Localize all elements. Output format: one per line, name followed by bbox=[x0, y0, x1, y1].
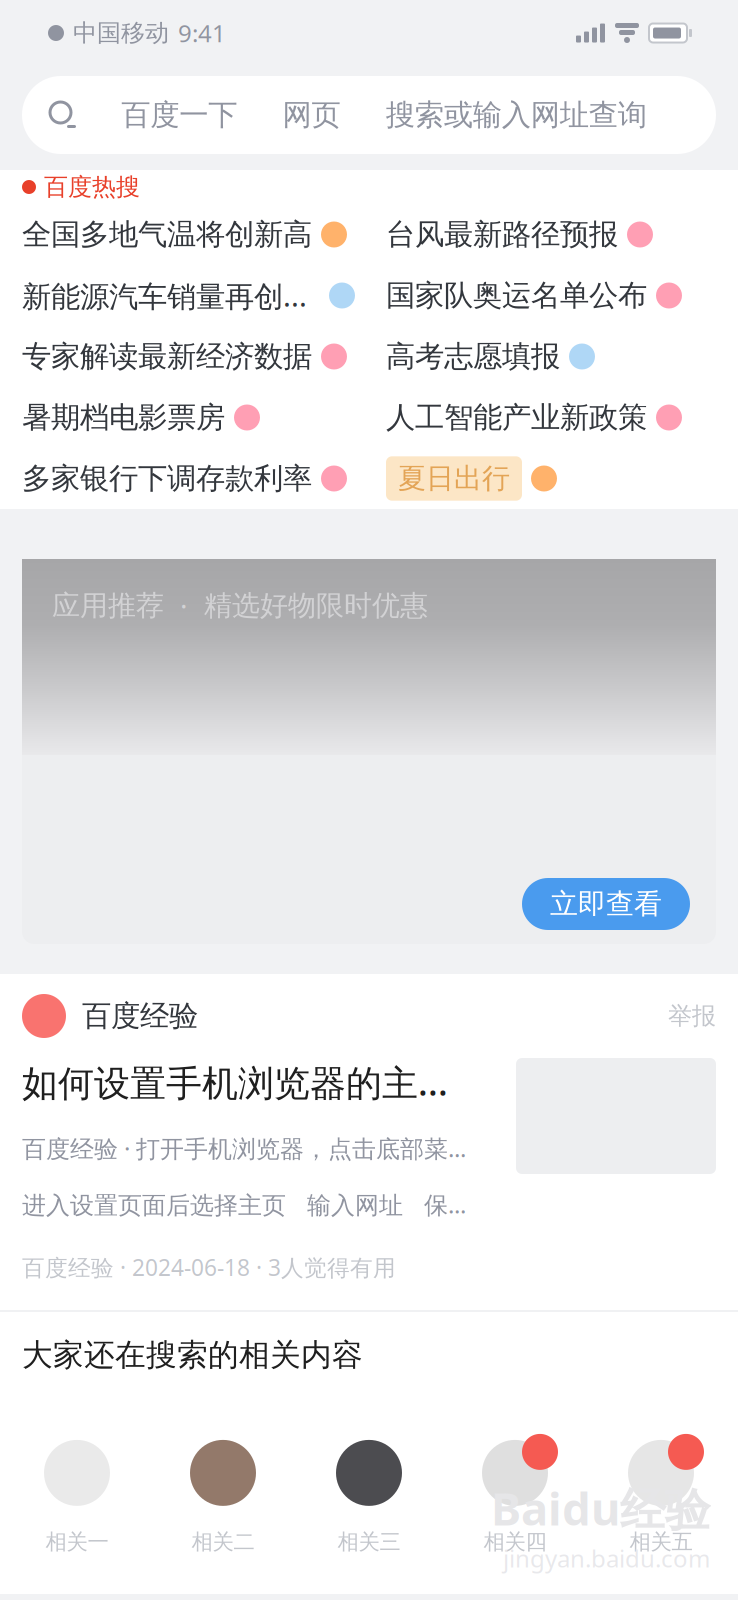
button[interactable]: 新能源汽车销量再创新高 bbox=[0, 265, 364, 326]
staticText: 人工智能产业新政策 bbox=[386, 399, 647, 435]
staticText: 相关一 bbox=[45, 1529, 108, 1555]
staticText: 进入设置页面后选择主页 输入网址 保存设置 bbox=[22, 1188, 480, 1220]
staticText: 台风最新路径预报 bbox=[386, 216, 618, 252]
button[interactable]: 相关四 bbox=[442, 1398, 588, 1594]
staticText: 全国多地气温将创新高 bbox=[22, 216, 312, 252]
staticText: 多家银行下调存款利率 bbox=[22, 460, 312, 496]
staticText: 高考志愿填报 bbox=[386, 338, 560, 374]
button[interactable]: 全国多地气温将创新高 bbox=[0, 204, 364, 265]
staticText: 百度经验 bbox=[82, 998, 198, 1034]
button[interactable]: 相关一 bbox=[4, 1398, 150, 1594]
staticText: 相关五 bbox=[629, 1529, 692, 1555]
staticText: 国家队奥运名单公布 bbox=[386, 277, 647, 313]
button[interactable]: 专家解读最新经济数据 bbox=[0, 326, 364, 387]
staticText: 相关四 bbox=[483, 1529, 546, 1555]
staticText: · bbox=[180, 587, 188, 624]
staticText: 网页 bbox=[282, 97, 340, 133]
button[interactable]: 如何设置手机浏览器的主页 浏览器首页设置 bbox=[0, 1058, 738, 1310]
staticText: jingyan.baidu.com bbox=[503, 1542, 710, 1574]
button[interactable]: 国家队奥运名单公布 bbox=[364, 265, 738, 326]
staticText: 中国移动 bbox=[73, 18, 169, 48]
button[interactable]: 百度一下 bbox=[22, 76, 716, 154]
staticText: 如何设置手机浏览器的主页 浏览器首页设置 bbox=[22, 1058, 480, 1106]
staticText: 相关三 bbox=[337, 1529, 400, 1555]
staticText: 举报 bbox=[668, 1001, 716, 1031]
staticText: 暑期档电影票房 bbox=[22, 399, 225, 435]
staticText: 精选好物限时优惠 bbox=[204, 588, 428, 623]
staticText: 9:41 bbox=[178, 17, 226, 49]
button[interactable]: 相关三 bbox=[296, 1398, 442, 1594]
staticText: 相关二 bbox=[191, 1529, 254, 1555]
button[interactable]: 高考志愿填报 bbox=[364, 326, 738, 387]
staticText: 立即查看 bbox=[550, 887, 662, 921]
button[interactable]: 夏日出行 bbox=[364, 448, 738, 509]
button[interactable]: 立即查看 bbox=[522, 878, 690, 930]
staticText: 百度经验 · 打开手机浏览器，点击底部菜单栏设置 bbox=[22, 1132, 480, 1164]
staticText: 新能源汽车销量再创新高 bbox=[22, 276, 320, 315]
staticText: 专家解读最新经济数据 bbox=[22, 338, 312, 374]
button[interactable]: 相关二 bbox=[150, 1398, 296, 1594]
button[interactable]: 暑期档电影票房 bbox=[0, 387, 364, 448]
staticText: 百度热搜 bbox=[44, 172, 140, 202]
staticText: 夏日出行 bbox=[398, 461, 510, 496]
staticText: Baidu经验 bbox=[491, 1478, 710, 1538]
staticText: 大家还在搜索的相关内容 bbox=[22, 1336, 363, 1374]
button[interactable]: 多家银行下调存款利率 bbox=[0, 448, 364, 509]
staticText: 百度一下 bbox=[121, 97, 237, 133]
button[interactable]: 台风最新路径预报 bbox=[364, 204, 738, 265]
staticText: 百度经验 · 2024-06-18 · 3人觉得有用 bbox=[22, 1252, 396, 1282]
button[interactable]: 相关五 bbox=[588, 1398, 734, 1594]
staticText: 搜索或输入网址查询 bbox=[386, 97, 647, 133]
button[interactable]: 人工智能产业新政策 bbox=[364, 387, 738, 448]
staticText: 应用推荐 bbox=[52, 588, 164, 623]
